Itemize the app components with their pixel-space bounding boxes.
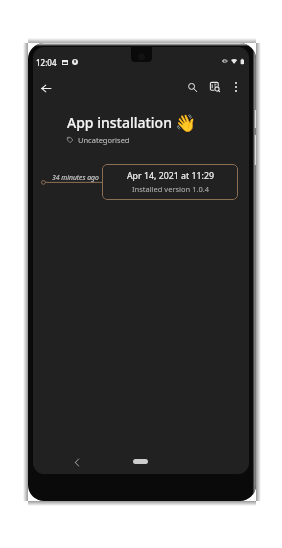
staticText: 34 minutes ago bbox=[52, 173, 99, 182]
staticText: Uncategorised bbox=[78, 135, 130, 145]
staticText: 12:04 bbox=[36, 57, 57, 68]
button[interactable]: Home bbox=[133, 459, 148, 464]
staticText: 👋 bbox=[175, 113, 197, 133]
staticText: Apr 14, 2021 at 11:29 bbox=[127, 170, 214, 182]
staticText: App installation bbox=[67, 113, 172, 132]
button[interactable]: Find in page bbox=[205, 77, 225, 97]
button[interactable]: Apr 14, 2021 at 11:29 bbox=[102, 164, 238, 200]
button[interactable]: Search bbox=[182, 77, 202, 97]
button[interactable]: More options bbox=[226, 77, 246, 97]
button[interactable]: Back bbox=[67, 452, 87, 472]
staticText: Installed version 1.0.4 bbox=[132, 184, 210, 194]
button[interactable]: Back bbox=[36, 78, 56, 98]
